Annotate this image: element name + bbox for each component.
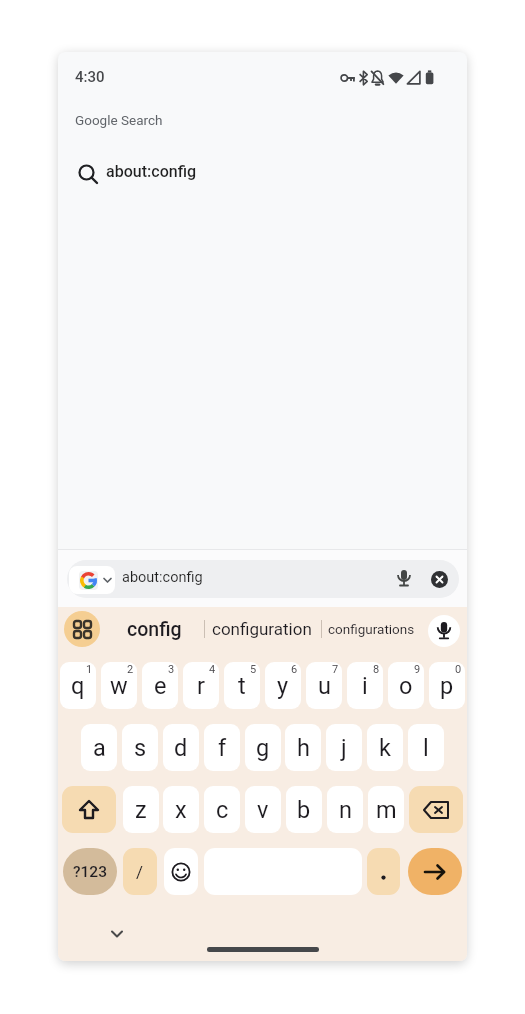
staticText: e bbox=[154, 672, 167, 700]
button[interactable] bbox=[367, 848, 400, 895]
staticText: j bbox=[341, 734, 347, 762]
staticText: 4:30 bbox=[75, 68, 105, 86]
staticText: 7 bbox=[332, 663, 339, 676]
button[interactable]: s bbox=[122, 724, 158, 771]
button[interactable]: z bbox=[123, 786, 159, 833]
button[interactable]: about:config bbox=[70, 155, 290, 191]
staticText: d bbox=[174, 734, 188, 762]
button[interactable]: x bbox=[163, 786, 199, 833]
staticText: q bbox=[71, 672, 85, 700]
button[interactable] bbox=[431, 571, 448, 588]
button[interactable]: w bbox=[101, 662, 137, 709]
button[interactable] bbox=[207, 947, 319, 952]
button[interactable]: b bbox=[286, 786, 322, 833]
staticText: configurations bbox=[328, 621, 415, 637]
staticText: 2 bbox=[127, 663, 134, 676]
staticText: g bbox=[256, 734, 270, 762]
button[interactable]: l bbox=[408, 724, 444, 771]
staticText: x bbox=[175, 796, 187, 824]
button[interactable]: d bbox=[163, 724, 199, 771]
staticText: f bbox=[218, 734, 227, 762]
button[interactable]: f bbox=[204, 724, 240, 771]
button[interactable] bbox=[64, 611, 100, 647]
staticText: r bbox=[197, 672, 205, 700]
button[interactable]: t bbox=[224, 662, 260, 709]
staticText: b bbox=[297, 796, 311, 824]
staticText: about:config bbox=[106, 162, 197, 181]
button[interactable]: v bbox=[245, 786, 281, 833]
button[interactable]: e bbox=[142, 662, 178, 709]
staticText: o bbox=[399, 672, 413, 700]
staticText: v bbox=[257, 796, 269, 824]
staticText: configuration bbox=[212, 619, 312, 639]
button[interactable]: i bbox=[347, 662, 383, 709]
button[interactable] bbox=[409, 786, 463, 833]
staticText: c bbox=[216, 796, 229, 824]
button[interactable]: configuration bbox=[192, 609, 332, 649]
button[interactable]: q bbox=[60, 662, 96, 709]
staticText: about:config bbox=[122, 569, 203, 586]
button[interactable]: y bbox=[265, 662, 301, 709]
button[interactable]: j bbox=[326, 724, 362, 771]
button[interactable]: r bbox=[183, 662, 219, 709]
button[interactable]: about:config bbox=[67, 560, 459, 598]
button[interactable] bbox=[394, 569, 414, 589]
button[interactable]: k bbox=[367, 724, 403, 771]
staticText: 8 bbox=[373, 663, 380, 676]
staticText: h bbox=[297, 734, 310, 762]
button[interactable]: ?123 bbox=[63, 848, 117, 895]
button[interactable]: p bbox=[429, 662, 465, 709]
button[interactable]: h bbox=[285, 724, 321, 771]
staticText: t bbox=[238, 672, 246, 700]
staticText: 6 bbox=[291, 663, 298, 676]
staticText: 4 bbox=[209, 663, 216, 676]
button[interactable] bbox=[204, 848, 362, 895]
staticText: i bbox=[362, 672, 368, 700]
button[interactable] bbox=[69, 566, 115, 594]
staticText: w bbox=[110, 672, 128, 700]
button[interactable]: o bbox=[388, 662, 424, 709]
button[interactable] bbox=[428, 615, 460, 647]
button[interactable] bbox=[62, 786, 116, 833]
button[interactable]: u bbox=[306, 662, 342, 709]
button[interactable]: n bbox=[327, 786, 363, 833]
button[interactable] bbox=[164, 848, 198, 895]
button[interactable]: a bbox=[81, 724, 117, 771]
button[interactable] bbox=[408, 848, 462, 895]
staticText: 0 bbox=[455, 663, 462, 676]
staticText: y bbox=[277, 672, 289, 700]
staticText: 1 bbox=[86, 663, 93, 676]
staticText: k bbox=[379, 734, 391, 762]
staticText: n bbox=[339, 796, 352, 824]
button[interactable]: m bbox=[368, 786, 404, 833]
staticText: s bbox=[134, 734, 147, 762]
button[interactable] bbox=[110, 929, 124, 939]
staticText: Google Search bbox=[75, 112, 163, 128]
staticText: z bbox=[135, 796, 147, 824]
staticText: 3 bbox=[168, 663, 175, 676]
staticText: m bbox=[376, 796, 397, 824]
staticText: 5 bbox=[250, 663, 257, 676]
button[interactable]: config bbox=[84, 609, 224, 649]
staticText: config bbox=[127, 618, 182, 641]
button[interactable]: c bbox=[204, 786, 240, 833]
staticText: p bbox=[440, 672, 454, 700]
button[interactable]: g bbox=[245, 724, 281, 771]
button[interactable]: configurations bbox=[301, 609, 441, 649]
staticText: u bbox=[318, 672, 331, 700]
staticText: 9 bbox=[414, 663, 421, 676]
staticText: / bbox=[136, 862, 144, 882]
button[interactable]: / bbox=[123, 848, 157, 895]
staticText: a bbox=[93, 734, 106, 762]
staticText: l bbox=[423, 734, 429, 762]
staticText: ?123 bbox=[73, 863, 107, 881]
